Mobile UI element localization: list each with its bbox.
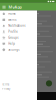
staticText: Notifications bbox=[8, 24, 25, 27]
staticText: MyApp bbox=[8, 4, 21, 9]
button[interactable]: Settings bbox=[0, 47, 37, 53]
button[interactable]: Help bbox=[0, 41, 37, 47]
button[interactable]: Events bbox=[0, 17, 37, 23]
staticText: Terms bbox=[2, 83, 9, 86]
button[interactable]: Profile bbox=[0, 29, 37, 35]
staticText: Help bbox=[8, 42, 15, 45]
button[interactable]: Home bbox=[0, 11, 37, 17]
staticText: Settings bbox=[8, 48, 19, 51]
staticText: Privacy bbox=[2, 87, 10, 90]
button[interactable]: Privacy bbox=[2, 87, 10, 90]
button[interactable]: Compose bbox=[46, 80, 52, 86]
staticText: Home bbox=[8, 12, 16, 15]
staticText: Profile bbox=[8, 30, 18, 33]
staticText: Events bbox=[8, 18, 16, 21]
button[interactable]: Notifications bbox=[0, 23, 37, 29]
button[interactable]: Groups bbox=[0, 35, 37, 41]
staticText: Groups bbox=[8, 36, 18, 39]
button[interactable]: Open navigation menu bbox=[2, 5, 6, 8]
button[interactable]: Terms bbox=[2, 83, 9, 86]
